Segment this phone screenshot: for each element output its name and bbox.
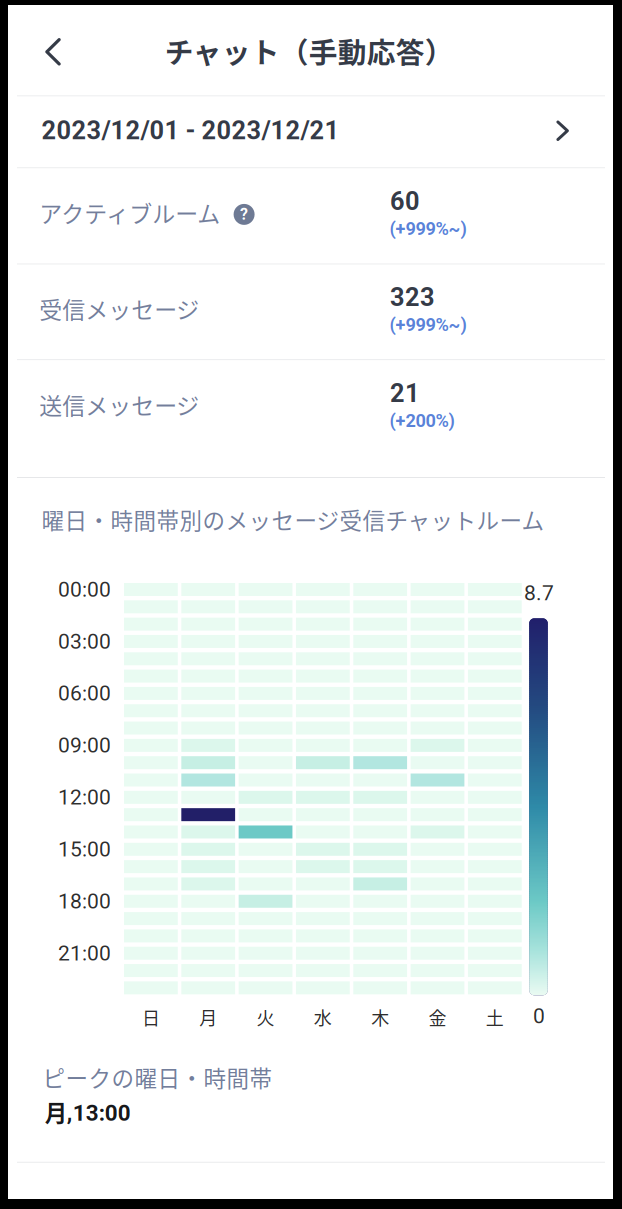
staticText: 受信メッセージ [39,292,199,325]
staticText: 8.7 [524,581,554,605]
staticText: 2023/12/01 - 2023/12/21 [42,116,340,145]
staticText: 323 [390,282,435,312]
staticText: 水 [314,1004,332,1030]
staticText: 18:00 [58,889,111,914]
staticText: 06:00 [58,681,111,706]
staticText: ピークの曜日・時間帯 [42,1061,272,1093]
staticText: 木 [371,1004,389,1030]
staticText: チャット（手動応答） [165,30,454,71]
staticText: 月,13:00 [45,1096,131,1128]
staticText: 日 [142,1004,160,1030]
staticText: 月 [199,1004,217,1030]
staticText: 03:00 [58,629,111,654]
staticText: 00:00 [58,577,111,602]
staticText: (+999%~) [389,218,466,239]
button[interactable]: 2023/12/01 - 2023/12/21 [8,96,613,167]
staticText: 21 [390,378,420,408]
button[interactable]: 受信メッセージ [8,265,613,359]
staticText: 送信メッセージ [39,388,199,421]
button[interactable]: Back [25,24,81,80]
button[interactable]: 送信メッセージ [8,360,613,455]
staticText: 土 [486,1004,504,1030]
staticText: 12:00 [58,785,111,810]
staticText: 曜日・時間帯別のメッセージ受信チャットルーム [41,503,544,536]
staticText: 金 [428,1004,446,1030]
staticText: 0 [533,1004,545,1028]
staticText: 21:00 [58,941,111,966]
staticText: (+999%~) [389,314,466,335]
staticText: 火 [256,1004,274,1030]
staticText: (+200%) [389,410,454,431]
staticText: 15:00 [58,837,111,862]
staticText: 60 [390,187,420,216]
staticText: ? [240,205,248,224]
staticText: 09:00 [58,733,111,758]
button[interactable]: アクティブルーム [8,168,613,264]
staticText: アクティブルーム [39,196,220,229]
